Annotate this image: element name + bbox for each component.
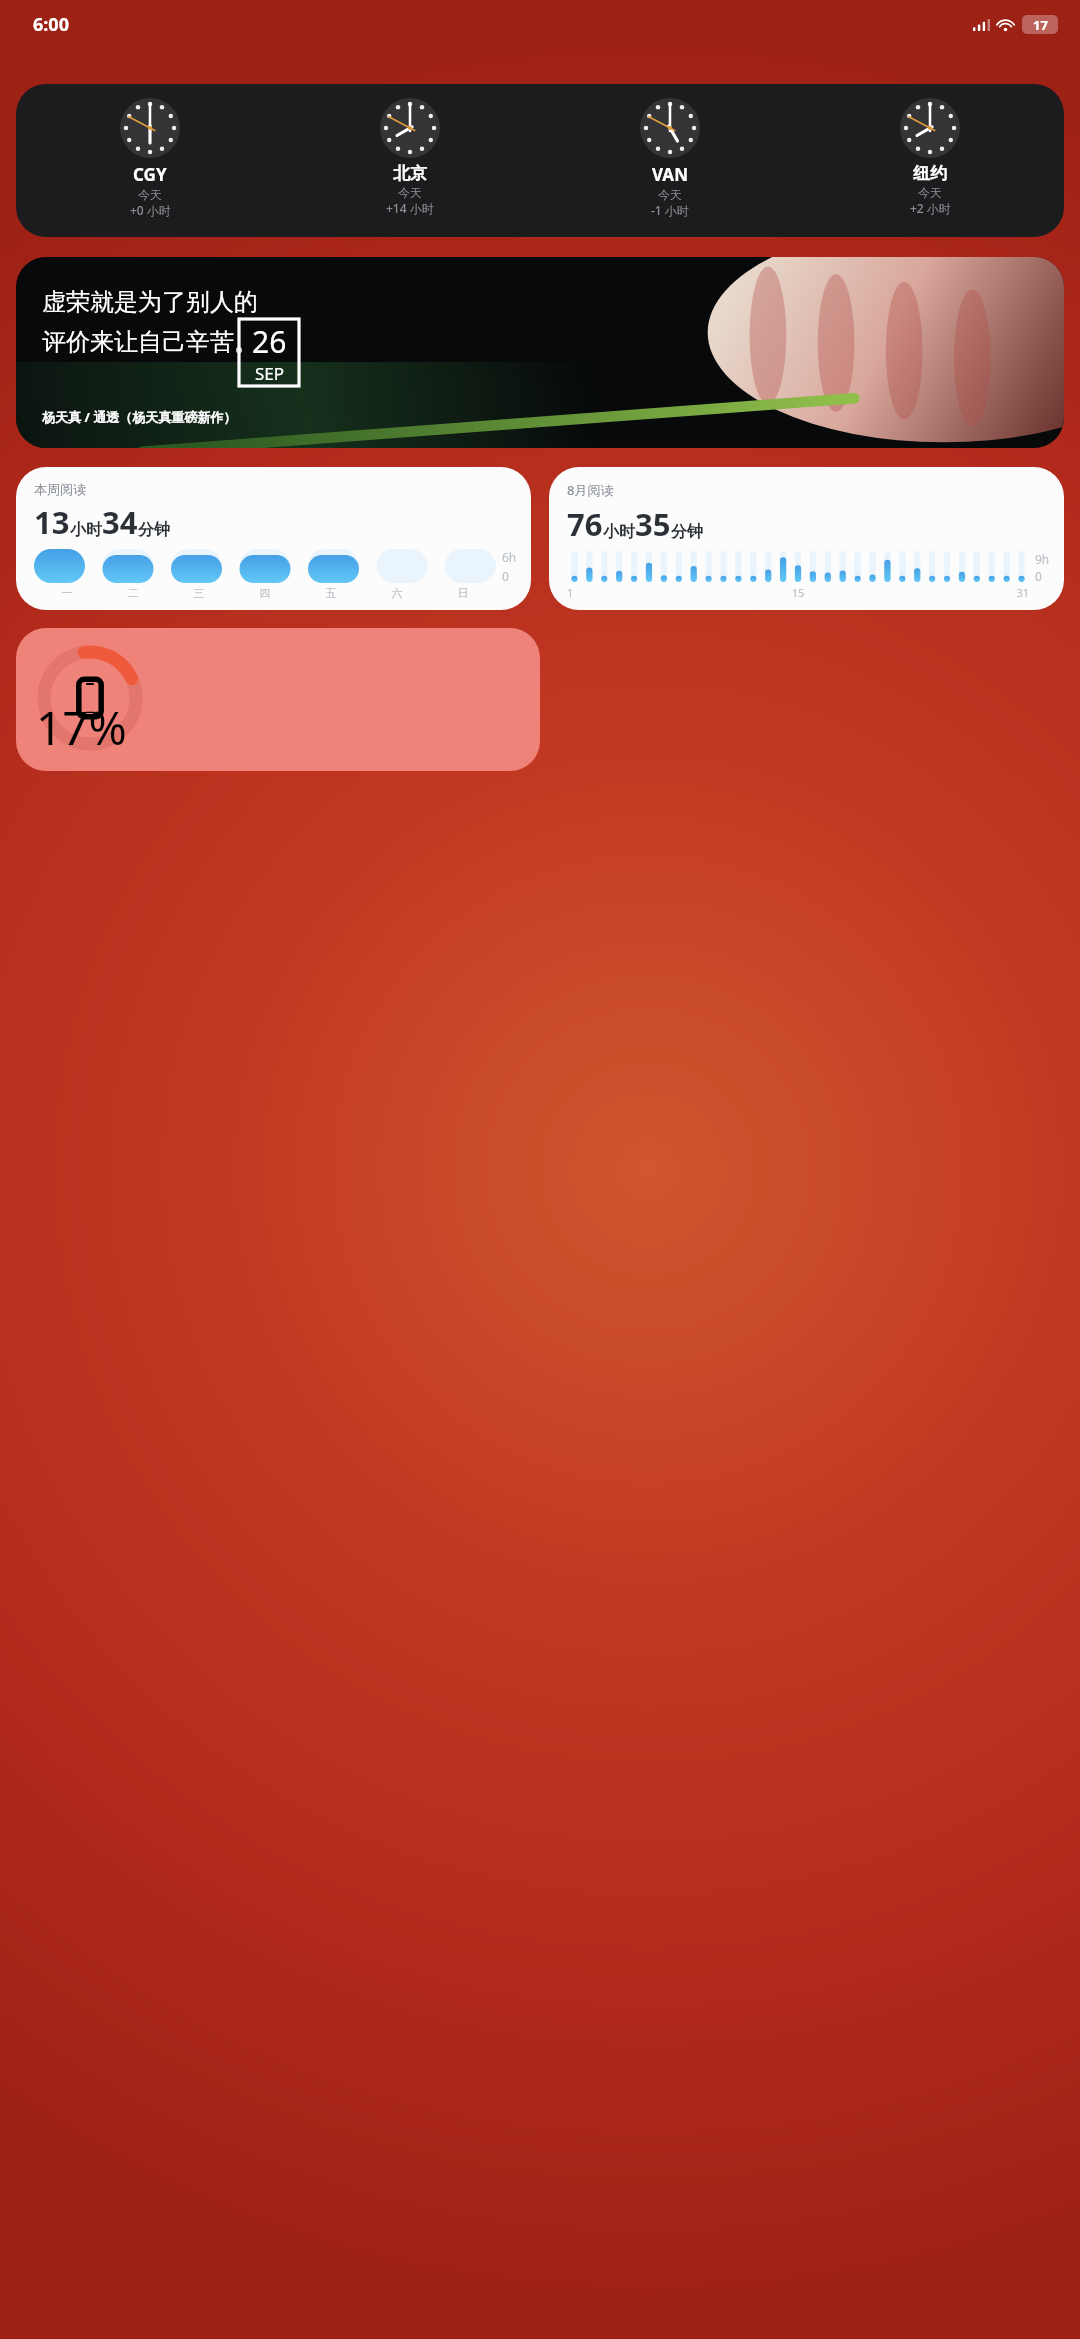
staticText: 15 xyxy=(721,585,875,600)
staticText: 北京 xyxy=(393,163,427,184)
staticText: 今天 xyxy=(918,185,942,200)
staticText: 0 xyxy=(1035,568,1042,584)
staticText: 四 xyxy=(232,586,298,600)
staticText: 分钟 xyxy=(138,520,170,540)
button[interactable]: Battery 17 percent xyxy=(16,628,540,771)
staticText: 纽约 xyxy=(913,163,947,184)
staticText: CGY xyxy=(133,163,167,186)
staticText: +14 小时 xyxy=(386,200,434,216)
staticText: 三 xyxy=(166,586,232,600)
button[interactable]: 本周阅读 xyxy=(16,467,531,610)
button[interactable]: 8月阅读 xyxy=(549,467,1064,610)
staticText: 今天 xyxy=(658,187,682,202)
staticText: 小时 xyxy=(70,520,102,540)
staticText: 9h xyxy=(1035,551,1050,567)
staticText: VAN xyxy=(652,163,688,186)
staticText: 17 xyxy=(1033,16,1048,34)
staticText: 35 xyxy=(635,503,671,545)
staticText: 6h xyxy=(502,549,517,565)
staticText: SEP xyxy=(255,362,285,385)
staticText: 0 xyxy=(502,568,509,584)
staticText: 分钟 xyxy=(671,522,703,542)
staticText: 34 xyxy=(102,501,138,543)
staticText: 日 xyxy=(430,586,496,600)
staticText: 6:00 xyxy=(33,12,69,37)
staticText: 六 xyxy=(364,586,430,600)
staticText: 76 xyxy=(567,503,603,545)
staticText: 二 xyxy=(100,586,166,600)
staticText: 8月阅读 xyxy=(567,481,614,499)
staticText: -1 小时 xyxy=(651,202,689,218)
staticText: 13 xyxy=(34,501,70,543)
staticText: 评价来让自己辛苦。 xyxy=(42,327,258,357)
staticText: 31 xyxy=(875,585,1029,600)
staticText: 今天 xyxy=(138,187,162,202)
staticText: 17% xyxy=(36,696,127,759)
staticText: 本周阅读 xyxy=(34,481,86,497)
staticText: 26 xyxy=(252,321,287,362)
staticText: 五 xyxy=(298,586,364,600)
staticText: 小时 xyxy=(603,522,635,542)
button[interactable]: CGY xyxy=(16,84,1064,237)
staticText: +2 小时 xyxy=(910,200,951,216)
button[interactable]: 虚荣就是为了别人的 xyxy=(16,257,1064,448)
staticText: +0 小时 xyxy=(130,202,171,218)
staticText: 虚荣就是为了别人的 xyxy=(42,287,258,317)
staticText: 杨天真 / 通透（杨天真重磅新作） xyxy=(42,408,237,426)
staticText: 一 xyxy=(34,586,100,600)
staticText: 1 xyxy=(567,585,721,600)
staticText: 今天 xyxy=(398,185,422,200)
